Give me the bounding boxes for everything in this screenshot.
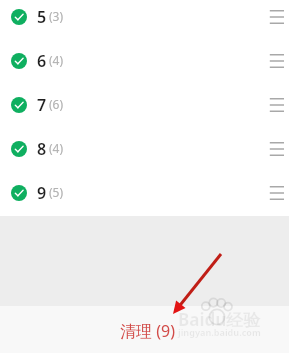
staticText: (4) [49,140,64,156]
staticText: 8 [37,138,47,160]
staticText: (4) [49,52,64,68]
staticText: jingyan.baidu.com [178,326,261,338]
staticText: (5) [49,184,64,200]
staticText: (3) [49,8,64,24]
button[interactable]: Selected, tap to deselect [0,83,289,127]
button[interactable]: 清理 (9) [0,306,289,353]
button[interactable]: Selected, tap to deselect [11,97,27,113]
staticText: 9 [37,182,47,204]
staticText: (6) [49,96,64,112]
button[interactable]: Selected, tap to deselect [0,39,289,83]
staticText: 6 [37,50,47,72]
button[interactable]: Selected, tap to deselect [11,185,27,201]
button[interactable]: Selected, tap to deselect [11,53,27,69]
button[interactable]: Selected, tap to deselect [0,171,289,215]
button[interactable]: Selected, tap to deselect [0,0,289,39]
button[interactable]: Selected, tap to deselect [11,9,27,25]
staticText: 5 [37,6,47,28]
button[interactable]: Selected, tap to deselect [11,141,27,157]
button[interactable]: Selected, tap to deselect [0,127,289,171]
button[interactable]: Reorder [253,87,289,123]
button[interactable]: Reorder [253,0,289,35]
button[interactable]: Reorder [253,175,289,211]
button[interactable]: Reorder [253,43,289,79]
staticText: Baidu经验 [178,308,261,331]
staticText: 清理 (9) [120,320,175,342]
staticText: 7 [37,94,47,116]
button[interactable]: Reorder [253,131,289,167]
